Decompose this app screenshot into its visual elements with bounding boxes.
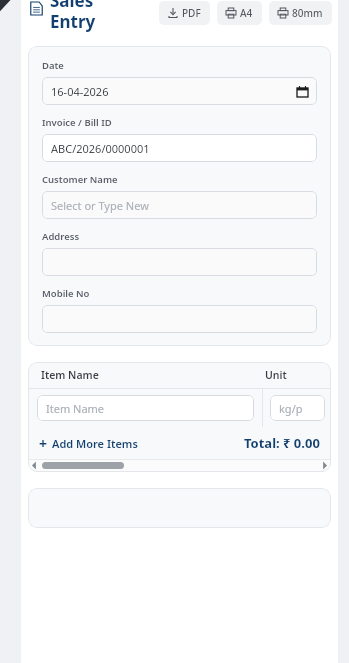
button[interactable]: Select or Type New	[42, 191, 317, 219]
staticText: Add More Items	[52, 436, 138, 451]
button[interactable]	[42, 305, 317, 333]
staticText: Item Name	[41, 368, 259, 382]
staticText: Total: ₹ 0.00	[244, 434, 320, 452]
staticText: Invoice / Bill ID	[42, 116, 112, 129]
button[interactable]: Collapse sidebar	[0, 0, 14, 14]
staticText: Address	[42, 230, 80, 243]
staticText: 80mm	[292, 6, 323, 20]
button[interactable]: +	[39, 434, 138, 453]
staticText: Item Name	[46, 401, 105, 416]
staticText: ABC/2026/0000001	[51, 141, 150, 156]
button[interactable]: kg/p	[270, 395, 325, 421]
button[interactable]	[42, 248, 317, 276]
staticText: Customer Name	[42, 173, 118, 186]
button[interactable]: ABC/2026/0000001	[42, 134, 317, 162]
staticText: Date	[42, 59, 64, 72]
staticText: Mobile No	[42, 287, 90, 300]
staticText: kg/p	[279, 401, 303, 416]
staticText: Select or Type New	[51, 198, 149, 213]
button[interactable]: Item Name	[37, 395, 254, 421]
button[interactable]: 16-04-2026	[42, 77, 317, 105]
staticText: PDF	[182, 6, 201, 20]
staticText: Unit	[265, 368, 331, 382]
button[interactable]: PDF	[159, 1, 210, 25]
staticText: 16-04-2026	[51, 84, 109, 99]
staticText: +	[39, 434, 48, 453]
button[interactable]: A4	[217, 1, 262, 25]
button[interactable]: 80mm	[269, 1, 332, 25]
staticText: Sales Entry	[50, 0, 108, 33]
staticText: A4	[240, 6, 253, 20]
